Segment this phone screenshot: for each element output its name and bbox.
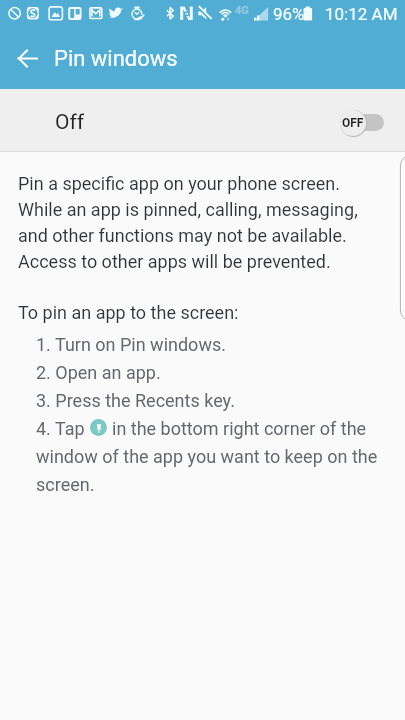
staticText: To pin an app to the screen: xyxy=(18,299,239,325)
staticText: 3. Press the Recents key. xyxy=(36,385,235,413)
staticText: 1. Turn on Pin windows. xyxy=(36,329,226,357)
staticText: in the bottom right corner of the xyxy=(112,413,367,441)
staticText: 4G xyxy=(235,4,249,17)
staticText: 2. Open an app. xyxy=(36,357,161,385)
staticText: 10:12 AM xyxy=(325,4,398,24)
staticText: Pin windows xyxy=(54,46,178,72)
staticText: 4. Tap xyxy=(36,413,85,441)
staticText: window of the app you want to keep on th… xyxy=(36,441,378,497)
button[interactable]: Off xyxy=(0,89,405,151)
staticText: OFF xyxy=(342,116,364,130)
button[interactable]: Navigate up xyxy=(9,40,45,76)
staticText: Pin a specific app on your phone screen.… xyxy=(18,170,358,274)
staticText: 96% xyxy=(273,4,305,24)
staticText: Off xyxy=(55,110,85,135)
